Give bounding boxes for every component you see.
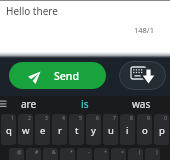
staticText: p [159, 124, 165, 137]
staticText: ( [139, 149, 141, 156]
staticText: 4 [62, 115, 65, 122]
staticText: 3 [45, 115, 48, 122]
staticText: are [21, 97, 37, 111]
button[interactable]: 0 [154, 114, 169, 145]
button[interactable]: @ [9, 148, 24, 160]
staticText: w [22, 124, 30, 137]
button[interactable]: ) [145, 148, 160, 160]
button[interactable]: 2 [18, 114, 33, 145]
staticText: e [40, 124, 46, 137]
staticText: t [75, 124, 79, 137]
staticText: 2 [28, 115, 31, 122]
staticText: 1 [11, 115, 14, 122]
staticText: Hello there [6, 4, 58, 18]
button[interactable]: = [111, 148, 126, 160]
button[interactable]: - [77, 148, 92, 160]
button[interactable]: & [43, 148, 58, 160]
staticText: is [81, 97, 89, 111]
staticText: # [35, 149, 39, 156]
button[interactable]: + [94, 148, 109, 160]
button[interactable]: 6 [86, 114, 101, 145]
button[interactable]: 4 [52, 114, 67, 145]
staticText: u [108, 124, 114, 137]
staticText: * [70, 149, 73, 156]
staticText: r [58, 124, 62, 137]
staticText: y [91, 124, 96, 137]
staticText: + [104, 149, 107, 156]
button[interactable]: # [26, 148, 41, 160]
staticText: 6 [96, 115, 99, 122]
button[interactable]: 8 [120, 114, 135, 145]
button[interactable]: 1 [1, 114, 16, 145]
staticText: & [52, 149, 56, 156]
staticText: ) [156, 149, 158, 156]
button[interactable]: 7 [103, 114, 118, 145]
button[interactable]: 9 [137, 114, 152, 145]
button[interactable]: Send [9, 62, 106, 89]
staticText: - [88, 149, 90, 156]
staticText: o [142, 124, 148, 137]
staticText: 7 [113, 115, 116, 122]
staticText: 148/1 [134, 25, 154, 35]
staticText: 8 [130, 115, 133, 122]
button[interactable]: 3 [35, 114, 50, 145]
staticText: 9 [147, 115, 150, 122]
button[interactable]: was [113, 96, 170, 112]
staticText: Send [54, 69, 79, 83]
staticText: @ [17, 149, 22, 156]
button[interactable] [119, 61, 166, 90]
button[interactable]: 5 [69, 114, 84, 145]
button[interactable]: is [57, 96, 113, 112]
staticText: q [6, 124, 12, 137]
button[interactable]: are [0, 96, 57, 112]
staticText: i [126, 124, 129, 137]
button[interactable]: ( [128, 148, 143, 160]
staticText: = [121, 149, 124, 156]
staticText: was [132, 97, 151, 111]
staticText: 0 [164, 115, 167, 122]
button[interactable]: * [60, 148, 75, 160]
staticText: 5 [79, 115, 82, 122]
